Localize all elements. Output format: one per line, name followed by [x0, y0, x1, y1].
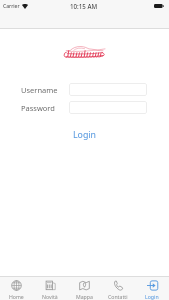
staticText: Carrier	[3, 3, 20, 10]
button[interactable]: Password	[69, 101, 147, 114]
button[interactable]: Username	[69, 83, 147, 96]
staticText: Contatti	[108, 293, 128, 300]
staticText: Login	[145, 293, 159, 300]
button[interactable]: Home	[0, 277, 33, 300]
button[interactable]: Login	[61, 127, 109, 143]
staticText: Novità	[42, 293, 58, 300]
staticText: Password	[21, 103, 55, 113]
button[interactable]: Mappa	[67, 277, 101, 300]
button[interactable]: Contatti	[101, 277, 135, 300]
staticText: Mappa	[76, 293, 93, 300]
staticText: 10:15 AM	[70, 2, 98, 10]
staticText: Login	[73, 129, 97, 141]
staticText: Home	[9, 293, 24, 300]
staticText: Username	[21, 85, 58, 95]
button[interactable]: Novità	[33, 277, 67, 300]
button[interactable]: Login	[135, 277, 169, 300]
